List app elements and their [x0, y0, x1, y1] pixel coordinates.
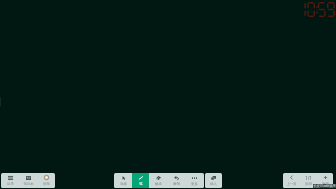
staticText: 页码 [305, 182, 312, 186]
staticText: 笔记本 [23, 182, 34, 186]
button[interactable]: 智慧 [37, 173, 55, 188]
button[interactable]: Add page [317, 173, 333, 188]
button[interactable]: 选择 [114, 173, 132, 188]
staticText: 新建 [322, 182, 329, 186]
button[interactable]: 1/1 [300, 173, 317, 188]
button[interactable]: 更多 [185, 173, 204, 188]
staticText: 笔 [139, 182, 143, 186]
button[interactable]: 橡皮 [149, 173, 167, 188]
button[interactable]: 目录 [1, 173, 19, 188]
staticText: 橡皮 [155, 182, 162, 186]
staticText: 1/1 [305, 175, 312, 181]
staticText: 上一页 [286, 182, 297, 186]
staticText: 智慧 [43, 182, 50, 186]
button[interactable]: 插入 [205, 173, 222, 188]
staticText: 插入 [210, 182, 217, 186]
button[interactable]: 笔 [132, 173, 149, 188]
button[interactable]: 笔记本 [19, 173, 37, 188]
staticText: 目录 [7, 182, 14, 186]
button[interactable]: 撤销 [167, 173, 185, 188]
staticText: 长按可调整顺序 [313, 184, 336, 188]
staticText: 更多 [191, 182, 198, 186]
staticText: 撤销 [173, 182, 180, 186]
staticText: 选择 [120, 182, 127, 186]
button[interactable]: Previous page [283, 173, 300, 188]
